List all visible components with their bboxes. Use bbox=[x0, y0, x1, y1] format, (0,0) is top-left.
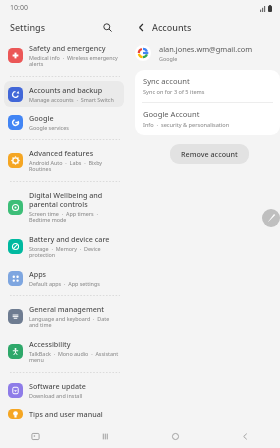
staticText: Screen time · App timers · Bedtime mode bbox=[29, 210, 119, 224]
staticText: TalkBack · Mono audio · Assistant menu bbox=[29, 350, 119, 364]
staticText: Google bbox=[29, 113, 54, 123]
staticText: Accounts bbox=[152, 21, 192, 33]
button[interactable]: Back bbox=[134, 20, 148, 34]
staticText: Accounts and backup bbox=[29, 85, 103, 95]
button[interactable]: Safety and emergency bbox=[4, 39, 124, 72]
button[interactable]: General management bbox=[4, 300, 124, 333]
button[interactable]: Home bbox=[140, 424, 210, 448]
button[interactable]: Recents bbox=[0, 424, 70, 448]
staticText: 10:00 bbox=[10, 3, 28, 13]
button[interactable]: Menu bbox=[70, 424, 140, 448]
staticText: Software update bbox=[29, 381, 86, 391]
staticText: alan.jones.wm@gmail.com bbox=[159, 44, 253, 54]
staticText: Digital Wellbeing and parental controls bbox=[29, 190, 119, 209]
button[interactable]: Sync account bbox=[135, 70, 280, 102]
button[interactable]: Back bbox=[210, 424, 280, 448]
staticText: Safety and emergency bbox=[29, 43, 106, 53]
button[interactable]: Edit bbox=[262, 209, 280, 227]
staticText: Settings bbox=[10, 21, 46, 33]
button[interactable]: Accounts and backup bbox=[4, 81, 124, 107]
staticText: Advanced features bbox=[29, 148, 94, 158]
button[interactable]: Accessibility bbox=[4, 335, 124, 368]
button[interactable]: alan.jones.wm@gmail.com bbox=[135, 44, 272, 62]
button[interactable]: Digital Wellbeing and parental controls bbox=[4, 186, 124, 228]
staticText: Manage accounts · Smart Switch bbox=[29, 96, 114, 103]
button[interactable]: Google bbox=[4, 109, 124, 135]
staticText: Remove account bbox=[181, 149, 238, 159]
staticText: Sync account bbox=[143, 76, 190, 86]
button[interactable]: Advanced features bbox=[4, 144, 124, 177]
staticText: Language and keyboard · Date and time bbox=[29, 315, 119, 329]
button[interactable]: Remove account bbox=[170, 144, 249, 164]
staticText: Google services bbox=[29, 124, 69, 131]
staticText: Battery and device care bbox=[29, 234, 110, 244]
staticText: Android Auto · Labs · Bixby Routines bbox=[29, 159, 119, 173]
button[interactable]: Tips and user manual bbox=[4, 405, 124, 423]
staticText: Accessibility bbox=[29, 339, 71, 349]
staticText: Download and install bbox=[29, 392, 83, 399]
staticText: Info · security & personalisation bbox=[143, 121, 230, 129]
staticText: General management bbox=[29, 304, 105, 314]
button[interactable]: Search bbox=[100, 20, 114, 34]
staticText: Storage · Memory · Device protection bbox=[29, 245, 119, 259]
staticText: Apps bbox=[29, 269, 47, 279]
staticText: Medical info · Wireless emergency alerts bbox=[29, 54, 119, 68]
button[interactable]: Google Account bbox=[135, 103, 280, 135]
staticText: Sync on for 3 of 5 items bbox=[143, 88, 205, 96]
staticText: Google Account bbox=[143, 109, 200, 119]
staticText: Google bbox=[159, 55, 178, 62]
button[interactable]: Software update bbox=[4, 377, 124, 403]
staticText: Default apps · App settings bbox=[29, 280, 100, 287]
button[interactable]: Apps bbox=[4, 265, 124, 291]
staticText: Tips and user manual bbox=[29, 409, 103, 419]
button[interactable]: Battery and device care bbox=[4, 230, 124, 263]
